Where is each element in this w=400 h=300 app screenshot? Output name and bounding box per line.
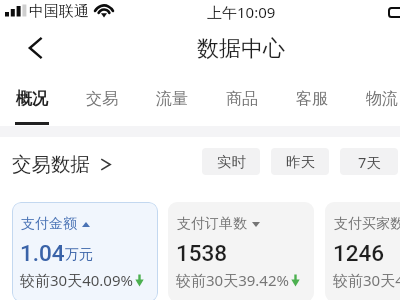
staticText: 中国联通 (29, 2, 89, 21)
staticText: 万元 (65, 246, 93, 264)
staticText: 商品 (226, 89, 258, 109)
button[interactable]: 支付订单数 (168, 202, 314, 300)
staticText: 物流 (366, 89, 398, 109)
button[interactable]: 昨天 (271, 148, 329, 175)
staticText: 昨天 (286, 153, 315, 171)
staticText: 上午10:09 (207, 2, 276, 22)
staticText: 实时 (217, 153, 246, 171)
button[interactable]: 交易 (76, 70, 128, 126)
button[interactable]: 物流 (356, 70, 400, 126)
staticText: 支付买家数 (334, 215, 400, 233)
staticText: 较前30天41.25% (333, 270, 400, 290)
staticText: 交易数据 (12, 152, 90, 177)
staticText: 较前30天39.42% (176, 270, 289, 290)
button[interactable]: 支付金额 (12, 202, 158, 300)
staticText: 支付订单数 (177, 215, 247, 233)
button[interactable]: 支付买家数 (325, 202, 400, 300)
staticText: 数据中心 (197, 35, 285, 63)
button[interactable]: 流量 (146, 70, 198, 126)
button[interactable]: Back (15, 28, 55, 68)
button[interactable]: 客服 (286, 70, 338, 126)
button[interactable]: 商品 (216, 70, 268, 126)
staticText: 支付金额 (21, 215, 77, 233)
button[interactable]: 7天 (340, 148, 398, 175)
staticText: 1538 (176, 240, 228, 266)
button[interactable]: 概况 (6, 70, 58, 126)
staticText: 交易 (86, 89, 118, 109)
button[interactable]: 实时 (202, 148, 260, 175)
staticText: 概况 (16, 89, 48, 109)
staticText: 流量 (156, 89, 188, 109)
staticText: 7天 (358, 152, 381, 172)
staticText: 1246 (333, 240, 385, 266)
staticText: 客服 (296, 89, 328, 109)
staticText: 1.04 (20, 240, 65, 266)
staticText: 较前30天40.09% (20, 270, 133, 290)
button[interactable]: 交易数据 (12, 152, 113, 177)
